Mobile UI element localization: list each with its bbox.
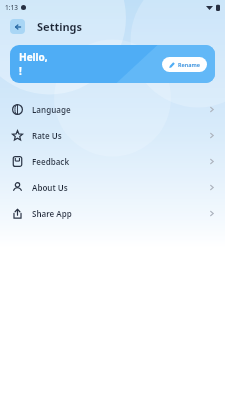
staticText: Language — [32, 104, 71, 115]
button[interactable]: Back — [10, 19, 25, 34]
button[interactable]: Rate Us — [0, 122, 225, 148]
button[interactable]: Language — [0, 96, 225, 122]
staticText: ! — [19, 64, 22, 78]
button[interactable]: Share App — [0, 200, 225, 226]
staticText: Share App — [32, 208, 72, 219]
staticText: Settings — [37, 19, 83, 34]
staticText: Hello, — [19, 50, 48, 64]
staticText: 1:13 — [5, 3, 18, 12]
staticText: Feedback — [32, 156, 70, 167]
button[interactable]: Rename — [162, 57, 207, 72]
button[interactable]: Feedback — [0, 148, 225, 174]
staticText: Rate Us — [32, 130, 62, 141]
staticText: Rename — [178, 61, 200, 68]
staticText: About Us — [32, 182, 68, 193]
button[interactable]: Hello, — [10, 45, 215, 83]
button[interactable]: About Us — [0, 174, 225, 200]
